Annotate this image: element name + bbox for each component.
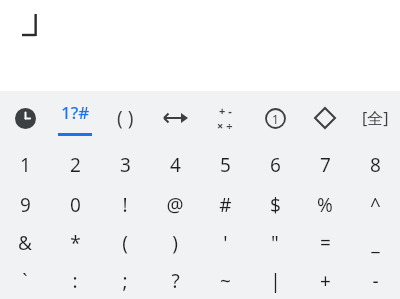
staticText: 4: [170, 152, 181, 178]
staticText: + -: [219, 103, 232, 118]
staticText: 1: [20, 152, 31, 178]
staticText: 1: [272, 111, 279, 127]
button[interactable]: 6: [250, 145, 300, 185]
button[interactable]: Enclosed characters: [250, 91, 300, 145]
staticText: !: [122, 192, 128, 218]
button[interactable]: -: [350, 262, 400, 299]
button[interactable]: 5: [200, 145, 250, 185]
staticText: @: [166, 192, 184, 218]
staticText: 0: [70, 192, 81, 218]
button[interactable]: @: [150, 185, 200, 224]
staticText: ~: [220, 268, 231, 294]
staticText: =: [320, 230, 331, 256]
staticText: × ÷: [217, 118, 233, 133]
button[interactable]: 7: [300, 145, 350, 185]
staticText: ?: [171, 268, 180, 294]
button[interactable]: Full width: [350, 91, 400, 145]
button[interactable]: Math symbols: [200, 91, 250, 145]
button[interactable]: :: [50, 262, 100, 299]
button[interactable]: ^: [350, 185, 400, 224]
staticText: |: [270, 268, 281, 294]
button[interactable]: ': [200, 224, 250, 262]
button[interactable]: _: [350, 224, 400, 262]
staticText: ( ): [117, 105, 134, 131]
button[interactable]: 8: [350, 145, 400, 185]
button[interactable]: |: [250, 262, 300, 299]
staticText: 9: [20, 192, 31, 218]
staticText: [全]: [362, 107, 389, 129]
button[interactable]: !: [100, 185, 150, 224]
button[interactable]: 1: [0, 145, 50, 185]
button[interactable]: Shapes: [300, 91, 350, 145]
staticText: $: [270, 192, 281, 218]
staticText: 2: [70, 152, 81, 178]
button[interactable]: $: [250, 185, 300, 224]
staticText: `: [22, 268, 28, 294]
staticText: (: [122, 230, 128, 256]
button[interactable]: 3: [100, 145, 150, 185]
button[interactable]: ( ): [100, 91, 150, 145]
staticText: %: [317, 192, 333, 218]
button[interactable]: *: [50, 224, 100, 262]
button[interactable]: (: [100, 224, 150, 262]
button[interactable]: ?: [150, 262, 200, 299]
staticText: ^: [370, 192, 381, 218]
staticText: &: [18, 230, 32, 256]
button[interactable]: Recent: [0, 91, 50, 145]
staticText: _: [371, 230, 380, 256]
button[interactable]: 2: [50, 145, 100, 185]
staticText: 8: [370, 152, 381, 178]
button[interactable]: +: [300, 262, 350, 299]
staticText: -: [372, 268, 379, 294]
button[interactable]: 0: [50, 185, 100, 224]
button[interactable]: 1?#: [50, 91, 100, 145]
staticText: #: [219, 192, 232, 218]
staticText: :: [72, 268, 78, 294]
button[interactable]: %: [300, 185, 350, 224]
button[interactable]: ;: [100, 262, 150, 299]
button[interactable]: ~: [200, 262, 250, 299]
staticText: ): [172, 230, 178, 256]
staticText: 3: [120, 152, 131, 178]
staticText: ;: [122, 268, 128, 294]
button[interactable]: #: [200, 185, 250, 224]
button[interactable]: Arrows: [150, 91, 200, 145]
staticText: *: [70, 230, 81, 256]
button[interactable]: ": [250, 224, 300, 262]
button[interactable]: &: [0, 224, 50, 262]
staticText: 6: [270, 152, 281, 178]
button[interactable]: `: [0, 262, 50, 299]
staticText: ': [223, 230, 228, 256]
staticText: 1?#: [61, 101, 90, 124]
button[interactable]: 9: [0, 185, 50, 224]
button[interactable]: ): [150, 224, 200, 262]
button[interactable]: =: [300, 224, 350, 262]
staticText: +: [320, 268, 331, 294]
staticText: 7: [320, 152, 331, 178]
staticText: 5: [220, 152, 231, 178]
staticText: ": [271, 230, 279, 256]
button[interactable]: 4: [150, 145, 200, 185]
